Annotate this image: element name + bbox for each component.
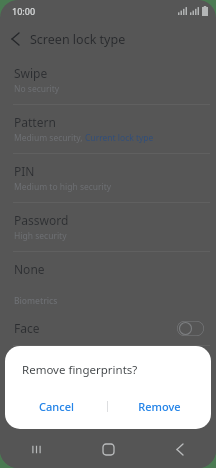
button[interactable]: Remove	[108, 391, 211, 421]
button[interactable]: Toggle off	[177, 321, 204, 336]
staticText: Registered	[14, 373, 57, 385]
staticText: Face	[14, 320, 40, 336]
staticText: Biometrics	[14, 295, 58, 307]
staticText: None	[14, 261, 45, 277]
staticText: Medium to high security	[14, 181, 112, 193]
button[interactable]: Home	[72, 430, 144, 468]
staticText: Remove	[138, 399, 181, 414]
staticText: Current lock type	[85, 132, 154, 144]
button[interactable]: Password	[0, 203, 216, 251]
button[interactable]: Recent apps	[0, 430, 72, 468]
staticText: Password	[14, 212, 69, 228]
button[interactable]: Pattern	[0, 105, 216, 153]
staticText: Medium security,	[14, 132, 85, 144]
staticText: Remove fingerprints?	[22, 362, 138, 378]
button[interactable]: Back	[144, 430, 216, 468]
button[interactable]: Back	[0, 24, 30, 54]
button[interactable]: Fingerprints	[0, 346, 216, 394]
button[interactable]: Cancel	[5, 391, 107, 421]
staticText: Swipe	[14, 65, 48, 81]
button[interactable]: None	[0, 252, 216, 286]
staticText: No security	[14, 83, 60, 95]
staticText: Screen lock type	[30, 31, 126, 48]
staticText: High security	[14, 230, 67, 242]
staticText: Pattern	[14, 114, 56, 130]
staticText: Cancel	[39, 399, 74, 414]
button[interactable]: PIN	[0, 154, 216, 202]
staticText: 10:00	[12, 5, 36, 17]
button[interactable]: Face	[0, 311, 216, 345]
staticText: Fingerprints	[14, 355, 83, 371]
button[interactable]: Swipe	[0, 56, 216, 104]
staticText: PIN	[14, 163, 35, 179]
